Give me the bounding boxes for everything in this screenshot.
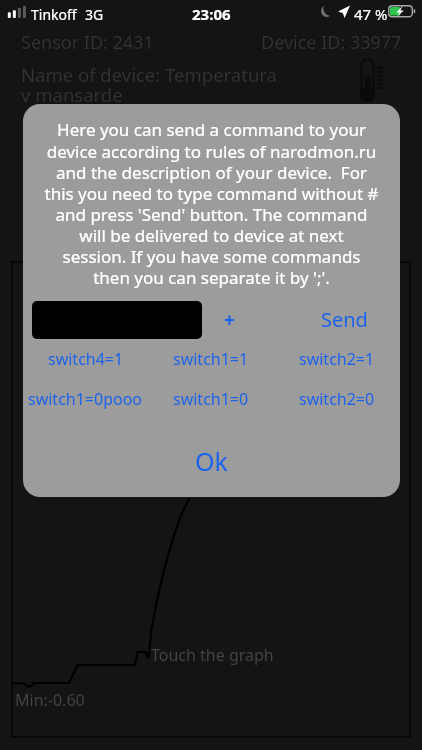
staticText: switch2=0 (299, 388, 375, 410)
staticText: switch2=1 (299, 348, 375, 370)
staticText: Device ID: 33977 (261, 30, 402, 55)
staticText: switch1=1 (173, 348, 249, 370)
button[interactable]: Ok (23, 441, 400, 481)
staticText: Here you can send a command to your devi… (23, 118, 400, 289)
button[interactable]: switch1=0pooo (23, 387, 148, 411)
button[interactable]: switch1=0 (148, 387, 274, 411)
button[interactable]: Add command (212, 303, 246, 337)
button[interactable]: switch4=1 (23, 347, 148, 371)
staticText: switch1=0 (173, 388, 249, 410)
staticText: 23:06 (192, 4, 231, 24)
button[interactable]: switch2=1 (274, 347, 400, 371)
staticText: Name of device: Temperatura v mansarde (21, 62, 277, 108)
staticText: 3G (85, 5, 104, 24)
staticText: Sensor ID: 2431 (21, 30, 154, 55)
staticText: + (224, 307, 235, 333)
staticText: Send (321, 306, 368, 333)
staticText: Touch the graph (151, 644, 274, 666)
staticText: switch4=1 (48, 348, 124, 370)
staticText: Ok (195, 444, 228, 478)
staticText: switch1=0pooo (28, 388, 143, 410)
button[interactable]: switch2=0 (274, 387, 400, 411)
button[interactable]: Command input (32, 301, 202, 339)
button[interactable]: Send (298, 303, 390, 335)
button[interactable]: switch1=1 (148, 347, 274, 371)
staticText: 47 % (354, 4, 388, 24)
staticText: Min:-0.60 (15, 689, 85, 711)
staticText: Tinkoff (31, 5, 77, 24)
